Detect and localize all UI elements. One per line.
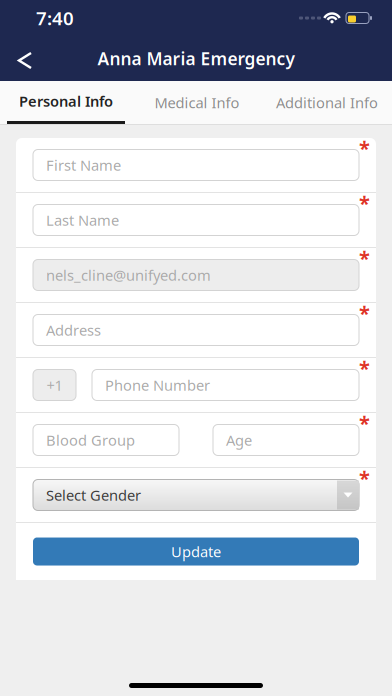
staticText: * — [359, 245, 370, 271]
staticText: Last Name — [46, 210, 119, 230]
staticText: +1 — [46, 375, 62, 395]
staticText: * — [359, 300, 370, 326]
button[interactable]: Update — [33, 537, 359, 565]
staticText: Update — [171, 542, 221, 561]
staticText: Personal Info — [19, 91, 113, 111]
staticText: nels_cline@unifyed.com — [46, 265, 211, 285]
staticText: * — [359, 465, 370, 491]
staticText: Select Gender — [46, 485, 141, 505]
staticText: * — [359, 190, 370, 216]
staticText: 7:40 — [36, 6, 74, 30]
button[interactable]: Select Gender — [33, 479, 359, 510]
staticText: Medical Info — [154, 93, 239, 112]
button[interactable]: Back — [0, 36, 48, 80]
staticText: Address — [46, 320, 101, 340]
button[interactable]: Personal Info — [0, 81, 132, 124]
button[interactable]: Additional Info — [262, 81, 392, 124]
staticText: * — [359, 355, 370, 381]
button[interactable]: Medical Info — [132, 81, 262, 124]
staticText: Blood Group — [46, 430, 135, 450]
staticText: * — [359, 410, 370, 436]
staticText: Age — [226, 430, 252, 450]
staticText: First Name — [46, 155, 121, 175]
staticText: Phone Number — [105, 375, 210, 395]
staticText: * — [359, 135, 370, 161]
staticText: Additional Info — [276, 93, 378, 112]
staticText: Anna Maria Emergency — [97, 47, 294, 70]
